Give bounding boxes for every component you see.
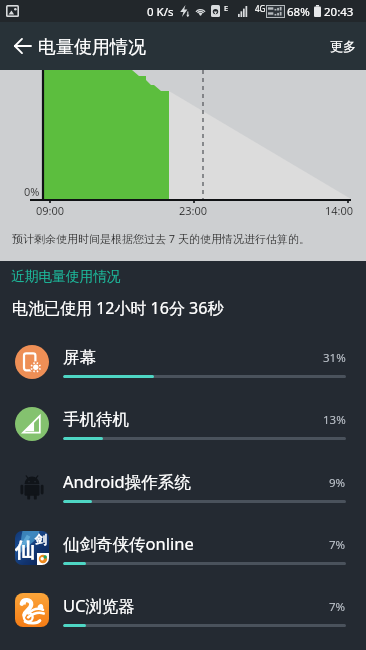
staticText: 4G bbox=[255, 3, 266, 14]
staticText: 屏幕 bbox=[63, 347, 96, 368]
staticText: 23:00 bbox=[179, 203, 208, 218]
button[interactable]: 更多 bbox=[330, 38, 356, 54]
staticText: UC浏览器 bbox=[63, 594, 135, 617]
button[interactable]: UC浏览器 bbox=[0, 579, 366, 641]
staticText: 电池已使用 12小时 16分 36秒 bbox=[12, 297, 224, 319]
staticText: 9% bbox=[329, 475, 346, 491]
staticText: 13% bbox=[323, 412, 346, 428]
staticText: 68% bbox=[287, 4, 310, 20]
staticText: 电量使用情况 bbox=[38, 36, 146, 59]
staticText: 31% bbox=[323, 350, 346, 366]
staticText: 仙 bbox=[15, 538, 35, 563]
staticText: 0 K/s bbox=[147, 4, 174, 20]
staticText: 20:43 bbox=[324, 4, 354, 20]
staticText: 预计剩余使用时间是根据您过去 7 天的使用情况进行估算的。 bbox=[12, 231, 311, 246]
button[interactable]: 屏幕 bbox=[0, 331, 366, 393]
staticText: 更多 bbox=[330, 38, 356, 54]
staticText: 14:00 bbox=[325, 203, 354, 218]
staticText: Android操作系统 bbox=[63, 470, 191, 493]
staticText: 09:00 bbox=[36, 203, 65, 218]
button[interactable]: 手机待机 bbox=[0, 393, 366, 455]
staticText: 仙剑奇侠传online bbox=[63, 532, 194, 555]
staticText: 7% bbox=[329, 537, 346, 553]
button[interactable]: Android操作系统 bbox=[0, 455, 366, 517]
staticText: 近期电量使用情况 bbox=[11, 268, 121, 285]
staticText: E bbox=[224, 3, 229, 13]
staticText: 剑 bbox=[35, 532, 47, 547]
staticText: 0% bbox=[24, 184, 40, 199]
button[interactable]: 仙 bbox=[0, 517, 366, 579]
staticText: 手机待机 bbox=[63, 409, 129, 430]
staticText: 7% bbox=[329, 599, 346, 615]
button[interactable]: Back bbox=[3, 24, 41, 68]
